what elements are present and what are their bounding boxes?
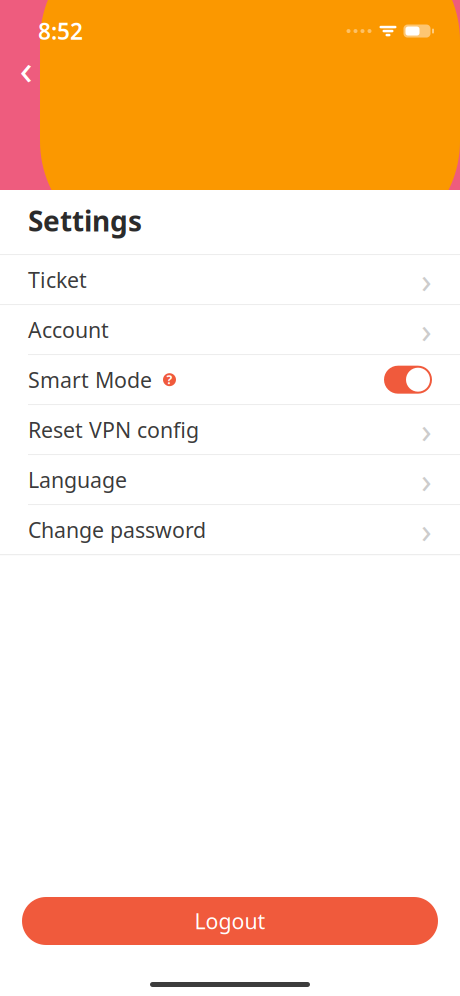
button[interactable]: Smart Mode: [0, 355, 460, 404]
staticText: Settings: [28, 202, 142, 239]
staticText: ?: [166, 372, 172, 388]
staticText: Smart Mode: [28, 365, 152, 394]
staticText: Ticket: [28, 265, 87, 294]
staticText: ›: [421, 257, 432, 303]
staticText: ›: [421, 307, 432, 353]
button[interactable]: Ticket: [0, 255, 460, 304]
staticText: 8:52: [38, 16, 83, 46]
button[interactable]: Back: [4, 46, 48, 90]
button[interactable]: Reset VPN config: [0, 405, 460, 454]
staticText: Reset VPN config: [28, 415, 199, 444]
staticText: ›: [421, 507, 432, 553]
button[interactable]: Language: [0, 455, 460, 504]
button[interactable]: Account: [0, 305, 460, 354]
staticText: Change password: [28, 515, 206, 544]
staticText: Account: [28, 315, 109, 344]
button[interactable]: Change password: [0, 505, 460, 554]
staticText: ‹: [19, 40, 32, 96]
staticText: Language: [28, 465, 127, 494]
staticText: ›: [421, 407, 432, 453]
staticText: Logout: [194, 907, 265, 935]
staticText: ›: [421, 457, 432, 503]
button[interactable]: Logout: [22, 897, 438, 945]
